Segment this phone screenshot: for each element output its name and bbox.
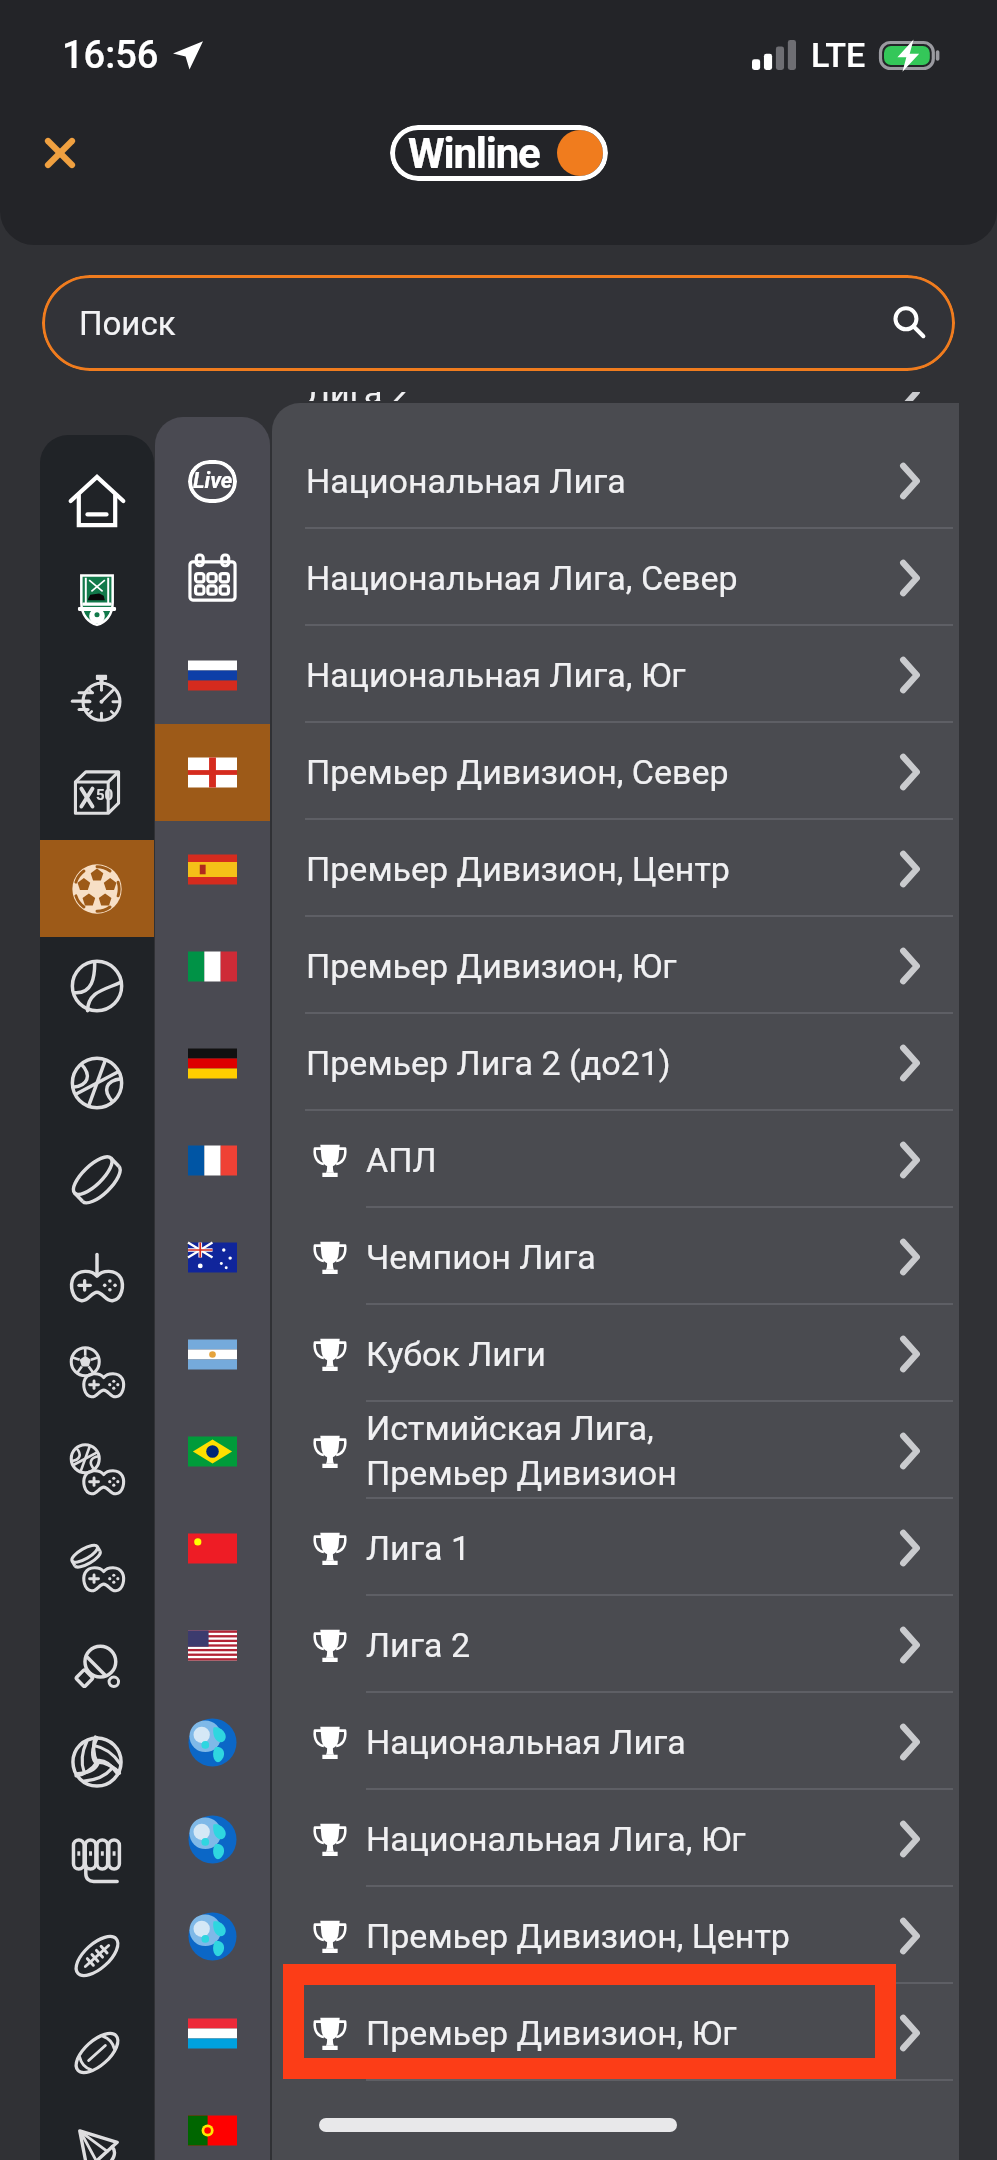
button[interactable]: Spain (155, 821, 270, 918)
button[interactable]: Лига 1 (272, 1499, 959, 1596)
button[interactable]: Премьер Лига 2 (до21) (272, 1014, 959, 1111)
button[interactable]: World (155, 1791, 270, 1888)
staticText: Национальная Лига, Север (306, 558, 738, 598)
button[interactable]: World (155, 1888, 270, 1985)
button[interactable]: Badminton (40, 2101, 154, 2160)
button[interactable]: Чемпион Лига (272, 1208, 959, 1305)
button[interactable]: Национальная Лига, Юг (272, 626, 959, 723)
staticText: Лига 2 (366, 1625, 471, 1665)
button[interactable]: Table tennis (40, 1616, 154, 1713)
button[interactable]: Национальная Лига (272, 1693, 959, 1790)
button[interactable]: Премьер Дивизион, Юг (272, 1984, 959, 2081)
button[interactable]: World (155, 1694, 270, 1791)
button[interactable]: Esports (40, 1228, 154, 1325)
button[interactable]: Hockey (40, 1131, 154, 1228)
button[interactable]: Germany (155, 1015, 270, 1112)
button[interactable]: Argentina (155, 1306, 270, 1403)
button[interactable]: Лига 2 (272, 1596, 959, 1693)
button[interactable]: Rugby (40, 2004, 154, 2101)
staticText: Чемпион Лига (366, 1237, 596, 1277)
button[interactable]: Tennis (40, 937, 154, 1034)
button[interactable]: Fast games (40, 646, 154, 743)
button[interactable]: Brazil (155, 1403, 270, 1500)
staticText: Премьер Дивизион, Центр (306, 849, 730, 889)
staticText: Live (193, 468, 233, 494)
staticText: Истмийская Лига, Премьер Дивизион (366, 1408, 677, 1493)
button[interactable]: Национальная Лига, Север (272, 529, 959, 626)
staticText: Премьер Дивизион, Центр (366, 1916, 790, 1956)
button[interactable]: Boxing (40, 1810, 154, 1907)
staticText: Национальная Лига (306, 461, 626, 501)
button[interactable]: Поиск (42, 275, 955, 371)
button[interactable]: France (155, 1112, 270, 1209)
button[interactable]: Национальная Лига (272, 432, 959, 529)
staticText: Кубок Лиги (366, 1334, 546, 1374)
staticText: Премьер Дивизион, Север (306, 752, 729, 792)
button[interactable]: Portugal (155, 2082, 270, 2160)
staticText: 50 (96, 786, 114, 804)
staticText: 16:56 (62, 33, 159, 78)
staticText: Национальная Лига (366, 1722, 686, 1762)
button[interactable]: Volleyball (40, 1713, 154, 1810)
staticText: Лига 2 (306, 392, 411, 401)
staticText: Премьер Дивизион, Юг (306, 946, 677, 986)
button[interactable]: Премьер Дивизион, Центр (272, 1887, 959, 1984)
button[interactable]: Australia (155, 1209, 270, 1306)
staticText: Национальная Лига, Юг (366, 1819, 746, 1859)
button[interactable]: Кубок Лиги (272, 1305, 959, 1402)
button[interactable]: England (155, 724, 270, 821)
staticText: Национальная Лига, Юг (306, 655, 686, 695)
staticText: Поиск (79, 304, 176, 343)
button[interactable]: Cyber basketball (40, 1422, 154, 1519)
button[interactable]: Премьер Дивизион, Север (272, 723, 959, 820)
staticText: Winline (408, 129, 540, 178)
staticText: Лига 1 (366, 1528, 471, 1568)
button[interactable]: Cyber football (40, 1325, 154, 1422)
button[interactable]: Luxembourg (155, 1985, 270, 2082)
button[interactable]: Премьер Дивизион, Центр (272, 820, 959, 917)
button[interactable]: X50 (40, 743, 154, 840)
button[interactable]: Basketball (40, 1034, 154, 1131)
button[interactable]: Italy (155, 918, 270, 1015)
button[interactable]: Национальная Лига, Юг (272, 1790, 959, 1887)
button[interactable]: China (155, 1500, 270, 1597)
button[interactable]: Calendar (155, 530, 270, 627)
button[interactable]: Истмийская Лига, Премьер Дивизион (272, 1402, 959, 1499)
button[interactable]: Close (26, 119, 94, 187)
staticText: LTE (811, 35, 866, 75)
button[interactable]: Russia (155, 627, 270, 724)
button[interactable]: Live (155, 433, 270, 530)
button[interactable]: Winline (390, 125, 608, 181)
staticText: Премьер Дивизион, Юг (366, 2013, 737, 2053)
button[interactable]: Krasnodar (40, 549, 154, 646)
button[interactable]: Football (40, 840, 154, 937)
button[interactable]: American football (40, 1907, 154, 2004)
staticText: Премьер Лига 2 (до21) (306, 1043, 671, 1083)
button[interactable]: USA (155, 1597, 270, 1694)
button[interactable]: Cyber hockey (40, 1519, 154, 1616)
button[interactable]: АПЛ (272, 1111, 959, 1208)
button[interactable]: Премьер Дивизион, Юг (272, 917, 959, 1014)
button[interactable]: Home (40, 452, 154, 549)
staticText: АПЛ (366, 1140, 437, 1180)
